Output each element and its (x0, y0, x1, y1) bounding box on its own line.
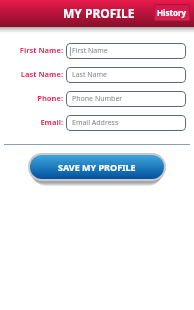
button[interactable]: SAVE MY PROFILE (30, 155, 164, 179)
button[interactable]: Phone Number (66, 91, 186, 107)
button[interactable]: History (154, 4, 190, 21)
button[interactable]: First Name (66, 43, 186, 59)
staticText: First Name: (0, 45, 63, 55)
staticText: Email Address (72, 118, 119, 128)
button[interactable]: Last Name (66, 67, 186, 83)
staticText: History (157, 7, 187, 18)
staticText: Email: (0, 117, 63, 127)
staticText: Phone Number (72, 94, 123, 104)
staticText: First Name (72, 46, 108, 56)
staticText: Last Name: (0, 69, 63, 79)
staticText: Phone: (0, 93, 63, 103)
staticText: MY PROFILE (63, 5, 135, 21)
staticText: SAVE MY PROFILE (58, 161, 136, 173)
staticText: Last Name (72, 70, 108, 80)
button[interactable]: Email Address (66, 115, 186, 131)
